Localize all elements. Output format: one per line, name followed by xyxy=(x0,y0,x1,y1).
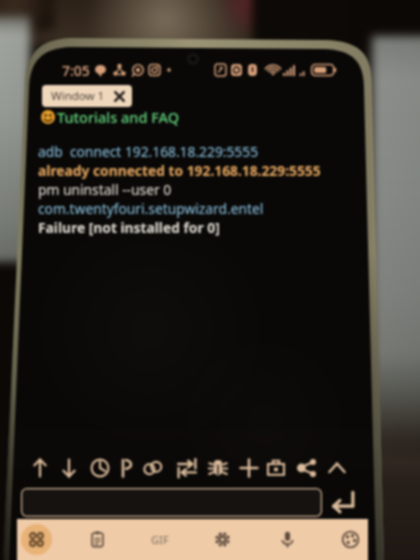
button[interactable]: Up xyxy=(26,453,54,483)
staticText: already connected to 192.168.18.229:5555 xyxy=(38,161,321,180)
button[interactable]: Paste xyxy=(113,453,141,483)
button[interactable]: GIF xyxy=(139,519,181,560)
button[interactable]: Tab xyxy=(173,453,201,483)
button[interactable]: Enter xyxy=(328,490,358,516)
staticText: GIF xyxy=(151,532,169,547)
staticText: adb connect 192.168.18.229:5555 xyxy=(38,142,259,161)
button[interactable]: Keyboard switcher xyxy=(15,519,57,560)
other: Close window xyxy=(114,91,125,102)
button[interactable]: Tutorials and FAQ xyxy=(41,107,180,127)
button[interactable]: Voice input xyxy=(266,519,308,560)
button[interactable]: Window 1 xyxy=(42,85,132,107)
button[interactable]: Settings xyxy=(201,519,243,560)
button[interactable]: Down xyxy=(55,453,83,483)
staticText: com.twentyfouri.setupwizard.entel xyxy=(38,199,264,218)
staticText: Tutorials and FAQ xyxy=(57,107,180,127)
button[interactable]: Clipboard xyxy=(76,519,118,560)
staticText: pm uninstall --user 0 xyxy=(38,180,172,199)
button[interactable]: Theme xyxy=(329,519,371,560)
button[interactable]: Share xyxy=(293,453,321,483)
button[interactable]: Terminal input xyxy=(21,488,322,517)
staticText: Window 1 xyxy=(51,88,105,104)
staticText: Failure [not installed for 0] xyxy=(38,218,220,237)
button[interactable]: Toolbox xyxy=(262,453,290,483)
button[interactable]: Add xyxy=(235,453,263,483)
button[interactable]: Ctrl xyxy=(323,453,351,483)
button[interactable]: History xyxy=(86,453,114,483)
button[interactable]: Link xyxy=(139,453,167,483)
button[interactable]: Debug xyxy=(204,453,232,483)
staticText: 7:05 xyxy=(62,61,90,80)
